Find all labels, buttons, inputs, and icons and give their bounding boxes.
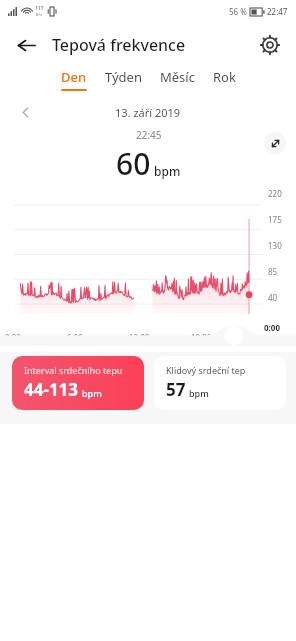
staticText: 22:47 (267, 6, 288, 17)
staticText: 13. září 2019 (115, 105, 181, 120)
staticText: bpm (154, 163, 181, 179)
staticText: 6:00 (67, 332, 83, 343)
staticText: 220 (268, 188, 282, 199)
button[interactable]: Den (59, 68, 89, 91)
staticText: Den (61, 68, 87, 86)
staticText: bpm (82, 387, 102, 399)
staticText: 60 (116, 143, 151, 184)
staticText: Interval srdečního tepu (24, 364, 123, 376)
staticText: 0:00 (264, 322, 280, 333)
button[interactable]: Měsíc (158, 68, 197, 89)
staticText: Tepová frekvence (52, 34, 186, 56)
staticText: 117 (35, 5, 44, 12)
button[interactable]: Back (8, 27, 44, 63)
staticText: 175 (268, 214, 282, 225)
button[interactable]: Settings (252, 27, 288, 63)
button[interactable]: Interval srdečního tepu (12, 356, 144, 410)
staticText: Rok (213, 68, 236, 86)
staticText: 56 % (229, 6, 247, 17)
staticText: 22:45 (136, 128, 162, 142)
button[interactable]: Previous day (12, 99, 38, 125)
staticText: 44-113 (24, 378, 79, 401)
staticText: Týden (105, 68, 142, 86)
staticText: 0:00 (5, 332, 21, 343)
staticText: bpm (189, 387, 209, 399)
button[interactable]: Expand chart (264, 132, 286, 154)
staticText: B/s (36, 12, 43, 17)
button[interactable]: Týden (103, 68, 144, 89)
staticText: Měsíc (160, 68, 195, 86)
button[interactable]: Rok (211, 68, 238, 89)
staticText: 12:00 (129, 332, 150, 343)
staticText: 18:00 (191, 332, 212, 343)
staticText: 130 (268, 240, 282, 251)
staticText: 40 (268, 292, 278, 303)
staticText: 85 (268, 266, 278, 277)
button[interactable]: Klidový srdeční tep (154, 356, 286, 410)
staticText: 57 (166, 378, 186, 401)
staticText: Klidový srdeční tep (166, 364, 246, 376)
